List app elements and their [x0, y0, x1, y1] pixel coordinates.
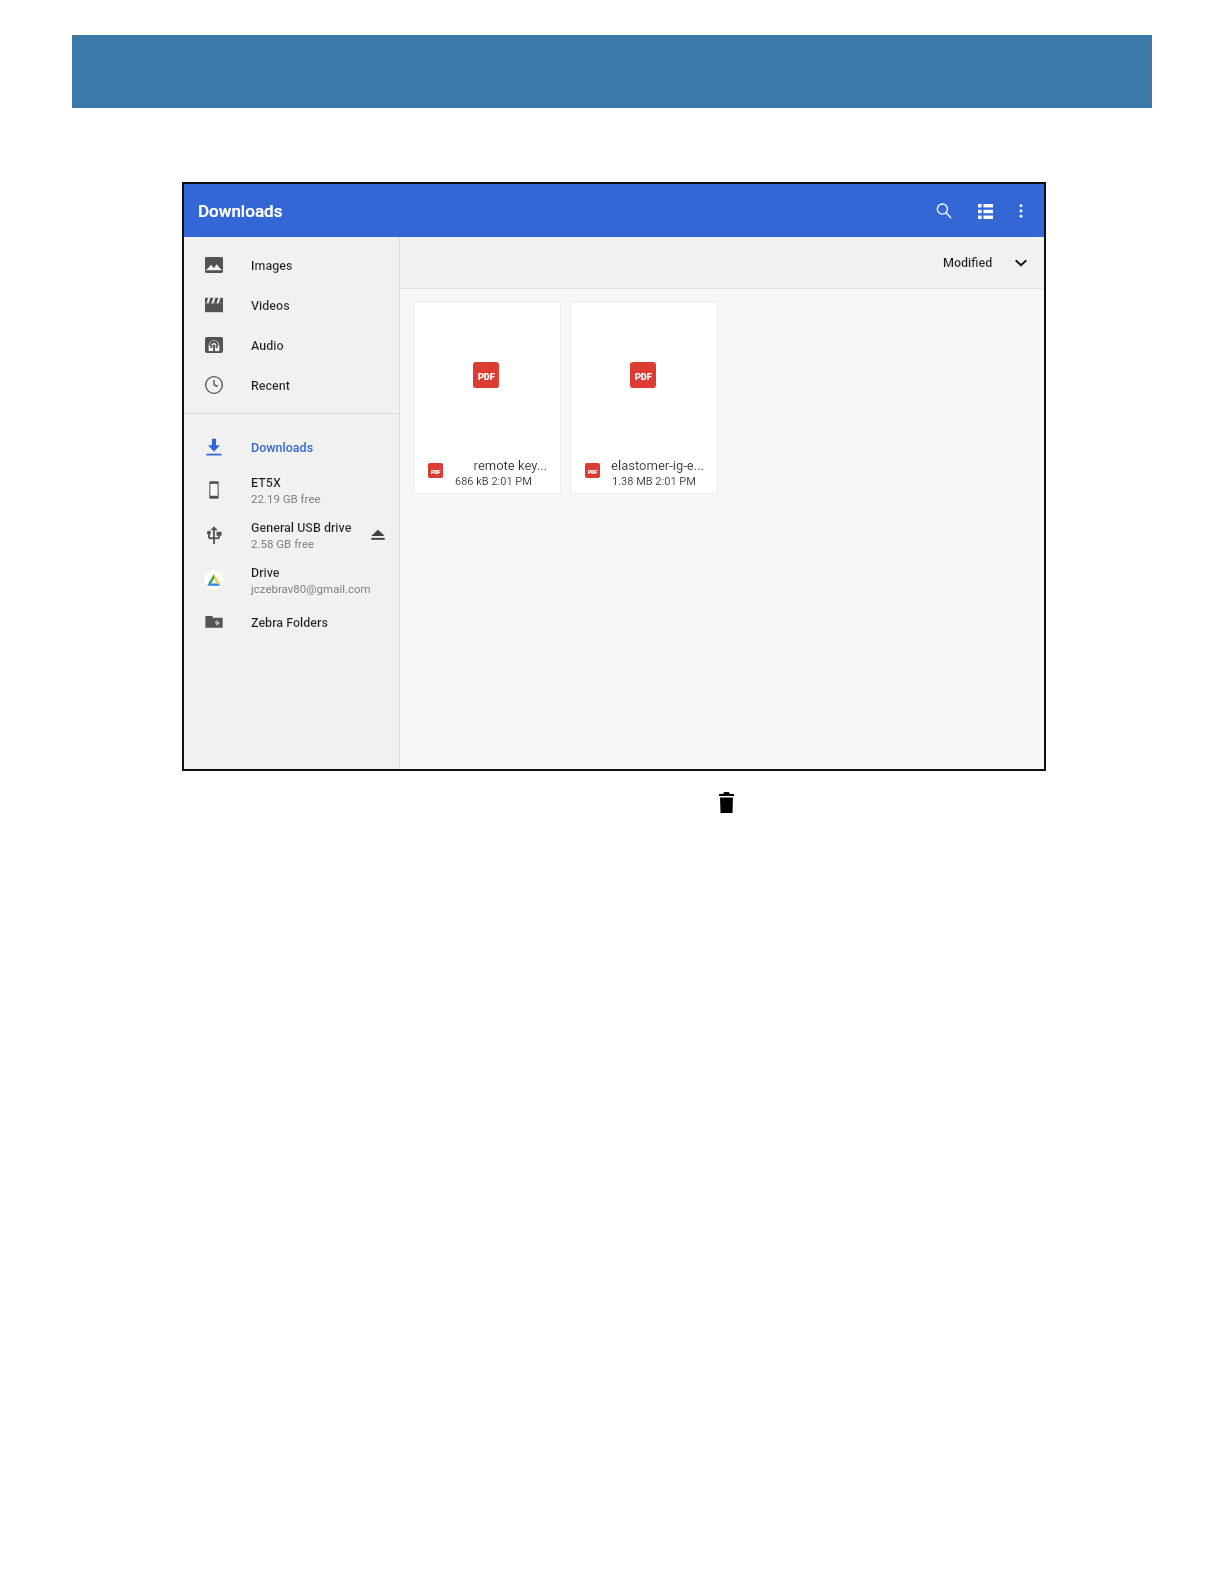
button[interactable]: Audio	[184, 325, 399, 365]
staticText: General USB drive	[251, 520, 352, 535]
staticText: 686 kB 2:01 PM	[455, 475, 532, 488]
button[interactable]: Images	[184, 245, 399, 285]
button[interactable]: General USB drive	[184, 512, 399, 557]
staticText: Images	[251, 258, 293, 273]
staticText: jczebrav80@gmail.com	[251, 582, 371, 595]
staticText: PDF	[588, 469, 598, 475]
button[interactable]: ET5X	[184, 467, 399, 512]
staticText: PDF	[635, 372, 652, 383]
staticText: Audio	[251, 338, 284, 353]
staticText: Zebra Folders	[251, 615, 328, 630]
button[interactable]: More options	[1004, 194, 1038, 228]
staticText: Modified	[943, 255, 993, 270]
staticText: elastomer-ig-e...	[590, 458, 704, 473]
staticText: remote key...	[433, 458, 547, 473]
staticText: 2.58 GB free	[251, 537, 315, 550]
staticText: 1.38 MB 2:01 PM	[612, 475, 696, 488]
staticText: ET5X	[251, 475, 281, 490]
staticText: Downloads	[198, 201, 283, 221]
staticText: Videos	[251, 298, 290, 313]
staticText: Downloads	[251, 440, 314, 455]
button[interactable]: Downloads	[184, 427, 399, 467]
button[interactable]: Delete	[706, 782, 746, 822]
button[interactable]: Videos	[184, 285, 399, 325]
button[interactable]: Switch to list view	[968, 194, 1002, 228]
staticText: 22.19 GB free	[251, 492, 321, 505]
staticText: Recent	[251, 378, 290, 393]
button[interactable]: Drive	[184, 557, 399, 602]
button[interactable]: Zebra Folders	[184, 602, 399, 642]
button[interactable]: Search	[927, 194, 961, 228]
button[interactable]: Eject	[367, 524, 389, 546]
button[interactable]: Modified	[935, 249, 1035, 276]
button[interactable]: PDF	[570, 301, 718, 494]
button[interactable]: Recent	[184, 365, 399, 405]
staticText: PDF	[431, 469, 441, 475]
button[interactable]: PDF	[413, 301, 561, 494]
staticText: PDF	[478, 372, 495, 383]
staticText: Drive	[251, 565, 280, 580]
